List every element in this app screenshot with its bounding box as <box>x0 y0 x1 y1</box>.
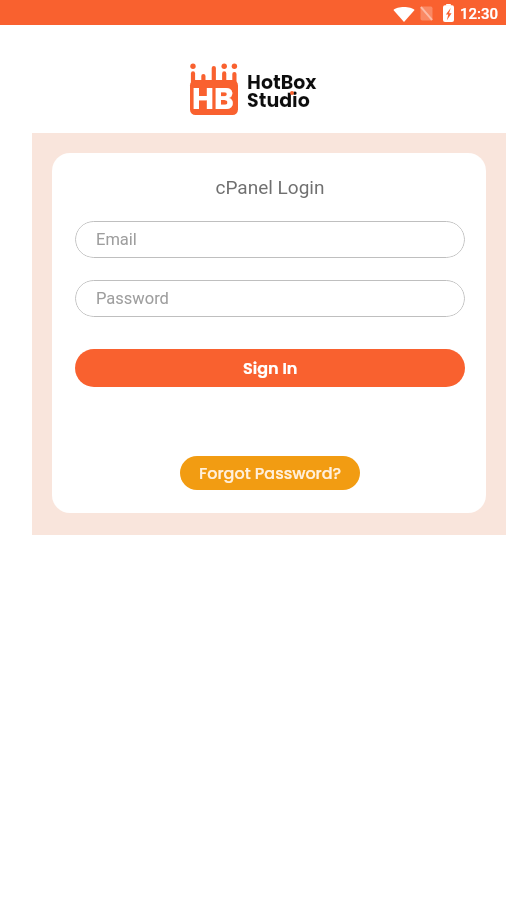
button[interactable]: Password <box>75 280 465 317</box>
staticText: Password <box>96 289 169 308</box>
staticText: cPanel Login <box>75 176 465 198</box>
staticText: Email <box>96 230 137 249</box>
staticText: HotBox <box>247 69 317 96</box>
button[interactable]: Sign In <box>75 349 465 387</box>
other: No SIM card <box>420 6 433 21</box>
staticText: Forgot Password? <box>199 462 342 484</box>
staticText: HB <box>192 78 234 120</box>
other: Battery charging <box>443 4 454 22</box>
other: Wi-Fi connected <box>393 5 415 22</box>
staticText: 12:30 <box>460 5 499 23</box>
button[interactable]: Forgot Password? <box>180 456 360 490</box>
staticText: Studio <box>247 87 310 114</box>
staticText: Sign In <box>243 357 298 379</box>
button[interactable]: Email <box>75 221 465 258</box>
